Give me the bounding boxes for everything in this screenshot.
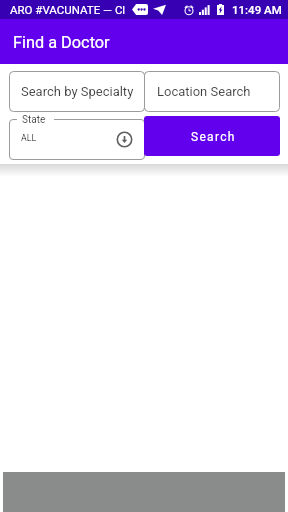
button[interactable]: State — [9, 119, 145, 160]
staticText: ARO #VACUNATE — Cl — [10, 3, 126, 16]
other: Open state dropdown — [116, 131, 133, 148]
staticText: Search — [191, 130, 236, 144]
staticText: 11:49 AM — [232, 3, 282, 16]
staticText: State — [22, 114, 46, 126]
staticText: ALL — [21, 133, 37, 143]
button[interactable]: Search by Specialty — [9, 71, 145, 112]
button[interactable]: Location Search — [144, 71, 280, 112]
staticText: Location Search — [157, 84, 251, 99]
button[interactable]: Search — [144, 116, 280, 156]
staticText: Find a Doctor — [13, 33, 110, 52]
staticText: Search by Specialty — [21, 84, 134, 99]
